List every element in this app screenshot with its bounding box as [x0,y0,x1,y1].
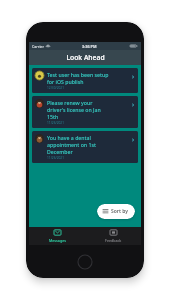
staticText: You have a dental [47,134,91,141]
other: Open message [130,102,135,107]
staticText: 3:36 PM [82,44,97,49]
staticText: December [47,148,73,155]
staticText: Messages [49,238,66,243]
button[interactable]: Please renew your [32,96,138,128]
other: Open message [130,137,135,142]
staticText: Feedback [105,238,122,243]
button[interactable]: Test user has been setup [32,68,138,93]
staticText: Test user has been setup [47,71,109,78]
staticText: Please renew your [47,99,93,106]
staticText: appointment on 1st [47,141,96,148]
staticText: 12/30/2021 [47,86,64,90]
button[interactable]: Messages [29,227,85,245]
staticText: Carrier [32,44,44,49]
staticText: 11/26/2021 [47,156,64,160]
staticText: driver's license on Jan [47,106,101,113]
staticText: for iOS publish [47,78,84,85]
staticText: 15th [47,113,59,120]
staticText: Sort by [111,208,129,215]
other: Open message [130,74,135,79]
staticText: Look Ahead [66,53,105,62]
button[interactable]: You have a dental [32,131,138,163]
button[interactable]: Feedback [85,227,141,245]
staticText: 11/26/2021 [47,121,64,125]
button[interactable]: Sort by [97,204,135,219]
